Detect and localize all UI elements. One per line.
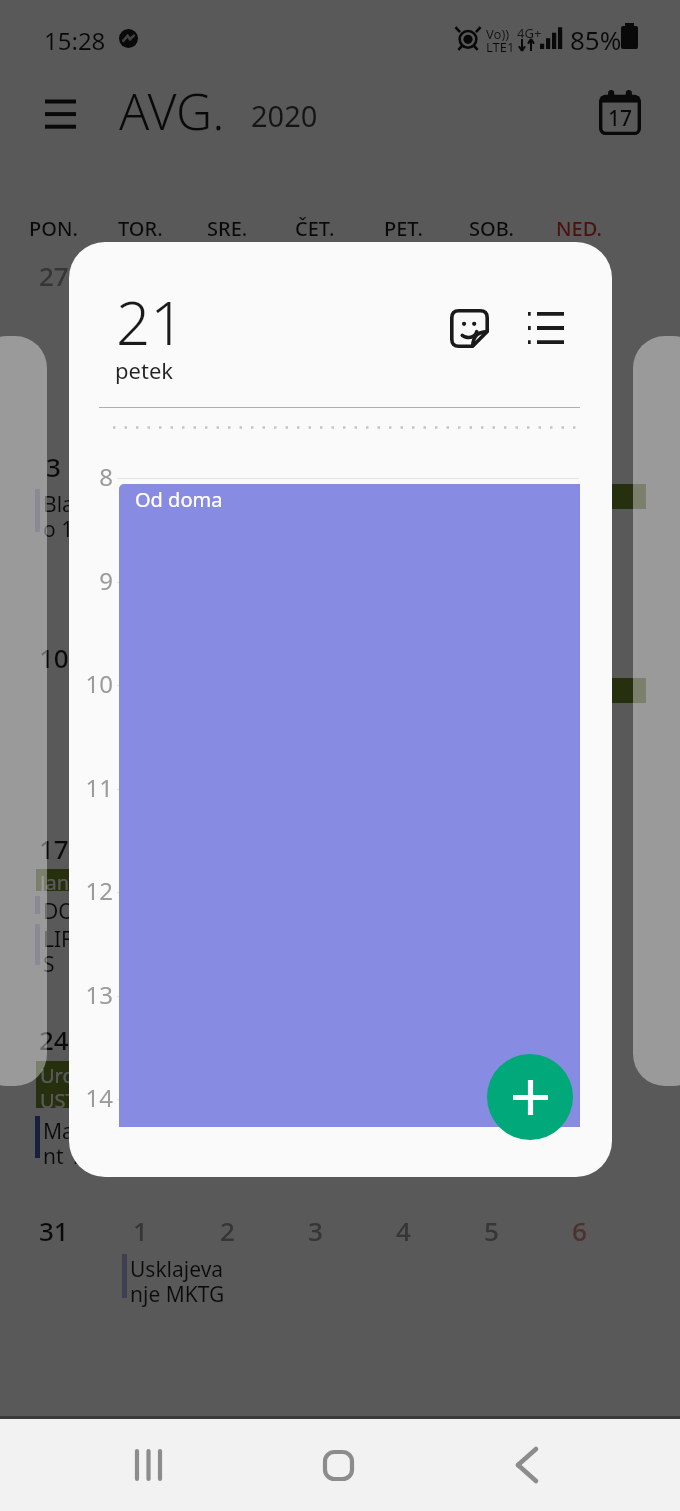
staticText: Janez — [40, 869, 90, 891]
staticText: 3 — [46, 449, 61, 484]
button[interactable]: Add event — [487, 1054, 573, 1140]
staticText: 12 — [69, 874, 113, 907]
staticText: LIFE S — [43, 925, 84, 978]
staticText: 4G+ — [517, 24, 542, 42]
staticText: 8 — [69, 460, 113, 493]
button[interactable]: Go to today — [594, 88, 646, 140]
button[interactable]: Back — [472, 1420, 582, 1510]
button[interactable]: Menu — [30, 85, 90, 145]
button[interactable]: Od doma — [119, 484, 580, 1127]
staticText: ČET. — [295, 215, 335, 242]
staticText: NED. — [556, 215, 602, 242]
staticText: 7 — [396, 449, 411, 484]
staticText: 85% — [570, 22, 622, 57]
staticText: 9 — [69, 564, 113, 597]
staticText: Blazina o 15:00 — [43, 490, 115, 543]
staticText: Od doma — [135, 486, 223, 513]
staticText: DOMEN — [43, 897, 122, 926]
staticText: 21 — [116, 281, 185, 363]
staticText: 13 — [69, 978, 113, 1011]
staticText: PET. — [384, 215, 423, 242]
staticText: 2020 — [251, 96, 318, 135]
staticText: 17 — [39, 831, 69, 866]
staticText: PON. — [29, 215, 78, 242]
staticText: Uros USTN — [40, 1062, 92, 1109]
staticText: petek — [115, 355, 174, 385]
staticText: 4 — [396, 1213, 411, 1248]
staticText: 30 — [564, 1022, 594, 1057]
staticText: 17 — [608, 104, 633, 133]
staticText: 23 — [564, 831, 594, 866]
staticText: 24 — [39, 1022, 69, 1057]
staticText: SOB. — [469, 215, 514, 242]
staticText: 27 — [39, 258, 69, 293]
staticText: Vo)) — [486, 25, 510, 43]
staticText: LTE1 — [486, 38, 515, 56]
staticText: SRE. — [207, 215, 248, 242]
staticText: 3 — [308, 1213, 323, 1248]
button[interactable]: Sticker — [437, 296, 501, 360]
button[interactable]: List view — [513, 296, 577, 360]
staticText: 2 — [220, 1213, 235, 1248]
staticText: 6 — [572, 1213, 587, 1248]
button[interactable]: Recent apps — [93, 1420, 203, 1510]
staticText: 1 — [133, 1213, 148, 1248]
staticText: Mast nt 10 — [43, 1117, 94, 1170]
staticText: 6 — [308, 449, 323, 484]
staticText: 4 — [133, 449, 148, 484]
staticText: 31 — [39, 1213, 69, 1248]
staticText: 10 — [39, 640, 69, 675]
staticText: 8 — [484, 449, 499, 484]
staticText: TOR. — [118, 215, 163, 242]
staticText: 11 — [69, 771, 113, 804]
staticText: 15:28 — [44, 24, 106, 57]
staticText: 5 — [220, 449, 235, 484]
staticText: 5 — [484, 1213, 499, 1248]
staticText: 14 — [69, 1081, 113, 1114]
button[interactable]: Home — [283, 1420, 393, 1510]
staticText: 10 — [69, 667, 113, 700]
staticText: 16 — [564, 640, 594, 675]
staticText: AVG. — [119, 77, 225, 145]
staticText: Usklajeva nje MKTG — [130, 1255, 225, 1308]
